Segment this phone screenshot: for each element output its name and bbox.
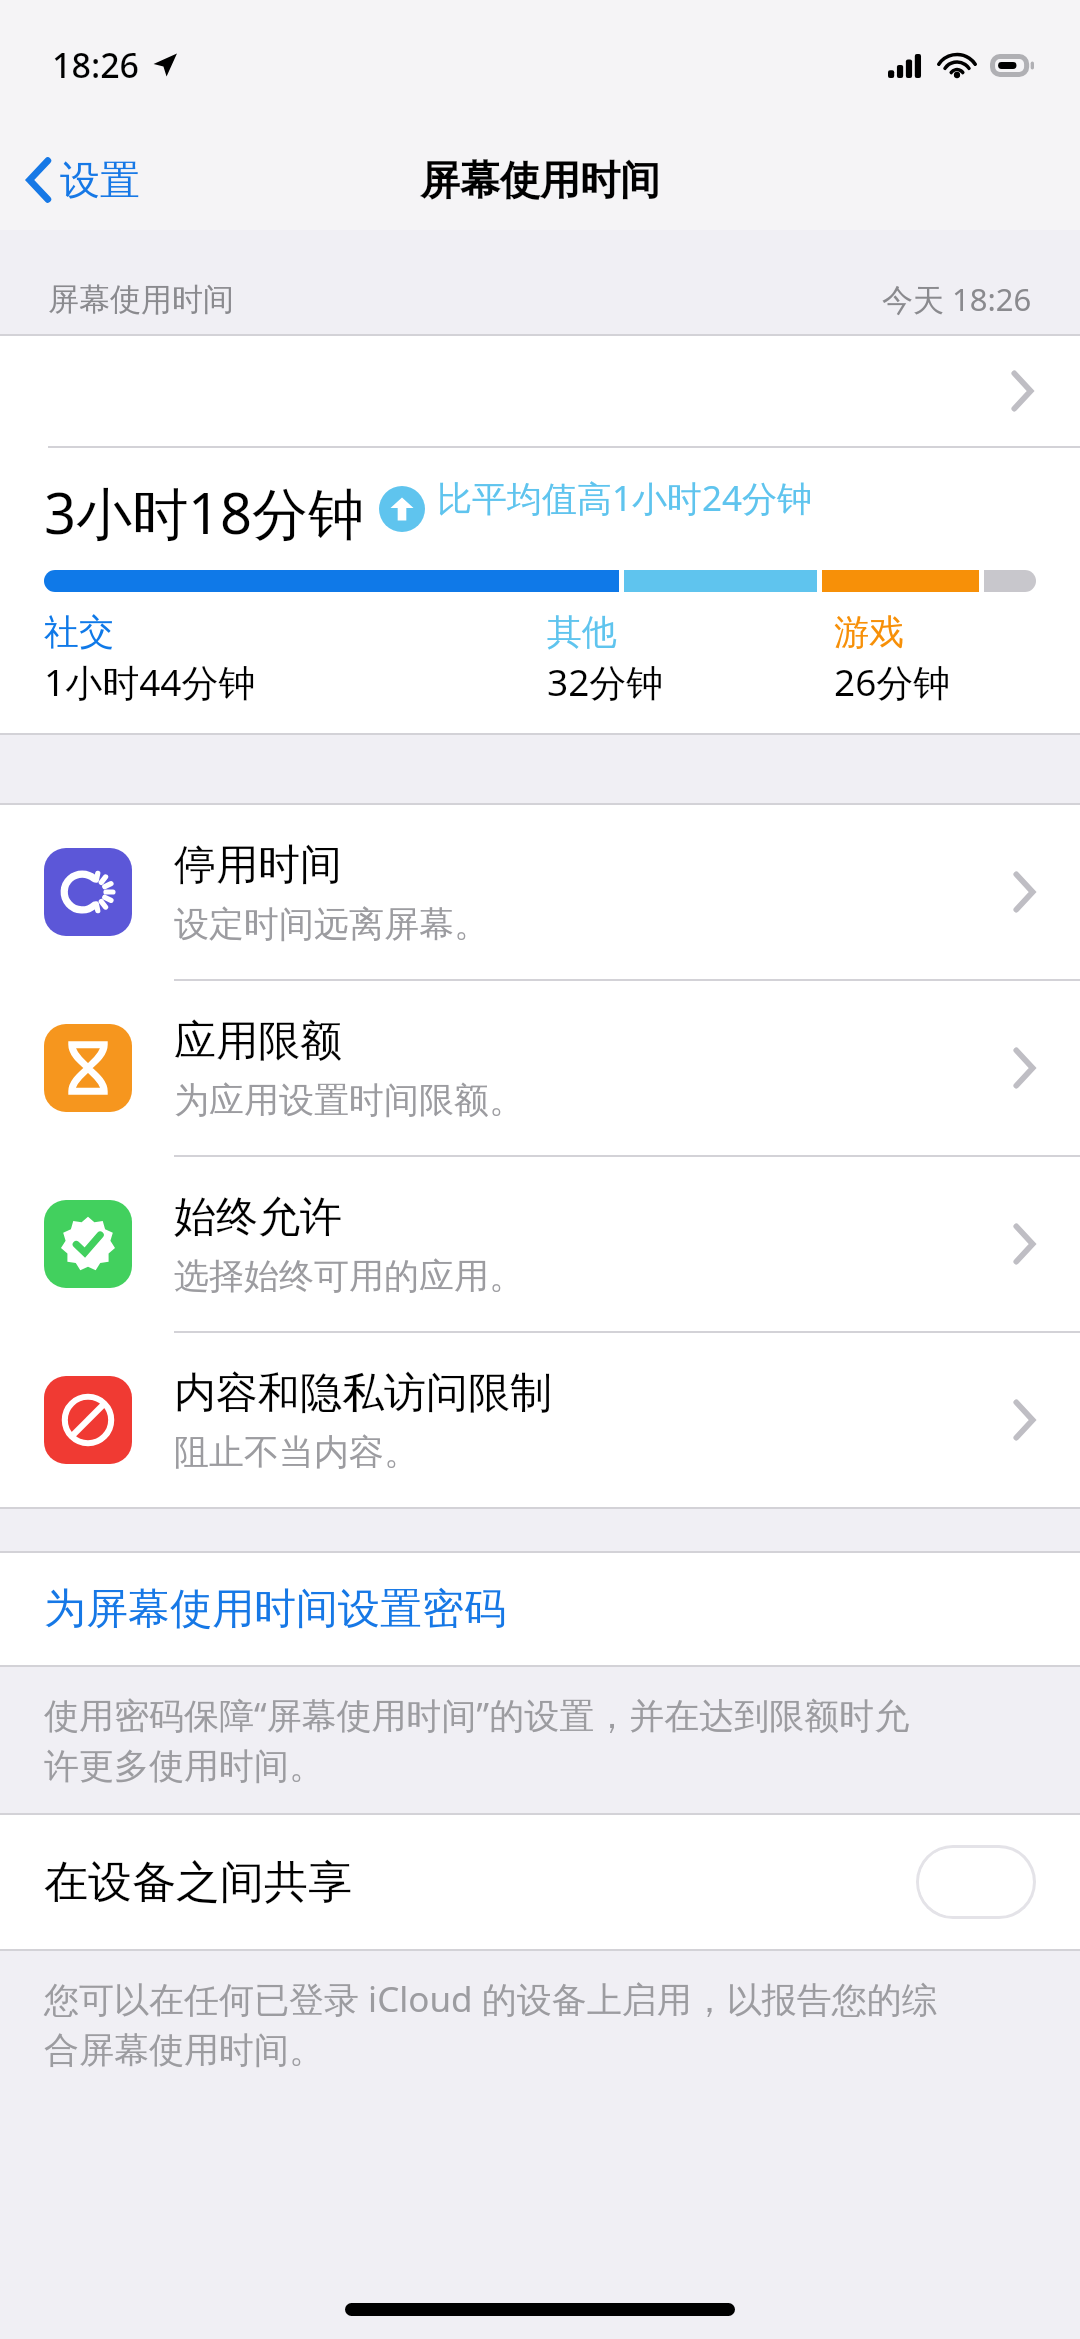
staticText: 在设备之间共享 <box>44 1855 352 1910</box>
staticText: 3小时18分钟 <box>44 474 365 550</box>
staticText: 屏幕使用时间 <box>420 155 660 205</box>
button[interactable]: 在设备之间共享 <box>0 1815 1080 1949</box>
button[interactable]: 应用限额 <box>0 981 1080 1157</box>
staticText: 使用密码保障“屏幕使用时间”的设置，并在达到限额时允 许更多使用时间。 <box>44 1691 910 1789</box>
staticText: 18:26 <box>52 42 140 88</box>
staticText: 为屏幕使用时间设置密码 <box>44 1583 506 1636</box>
button[interactable]: 设置 <box>0 145 162 215</box>
button[interactable]: 为屏幕使用时间设置密码 <box>0 1553 1080 1665</box>
staticText: 今天 18:26 <box>882 278 1032 320</box>
staticText: 设定时间远离屏幕。 <box>174 902 489 946</box>
staticText: 1小时44分钟 <box>44 656 256 707</box>
staticText: 选择始终可用的应用。 <box>174 1254 524 1298</box>
staticText: 屏幕使用时间 <box>48 280 234 319</box>
button[interactable]: 始终允许 <box>0 1157 1080 1333</box>
button[interactable]: 停用时间 <box>0 805 1080 981</box>
staticText: 阻止不当内容。 <box>174 1430 419 1474</box>
button[interactable]: 内容和隐私访问限制 <box>0 1333 1080 1507</box>
staticText: 设置 <box>60 155 140 205</box>
staticText: 比平均值高1小时24分钟 <box>437 474 813 522</box>
staticText: 为应用设置时间限额。 <box>174 1078 524 1122</box>
staticText: 停用时间 <box>174 839 342 892</box>
button[interactable]: 查看全部活动 <box>0 336 1080 446</box>
staticText: 内容和隐私访问限制 <box>174 1367 552 1420</box>
staticText: 社交 <box>44 610 114 654</box>
staticText: 应用限额 <box>174 1015 342 1068</box>
staticText: 始终允许 <box>174 1191 342 1244</box>
staticText: 您可以在任何已登录 iCloud 的设备上启用，以报告您的综 合屏幕使用时间。 <box>44 1975 937 2073</box>
staticText: 游戏 <box>834 610 904 654</box>
staticText: 其他 <box>547 610 617 654</box>
staticText: 26分钟 <box>834 656 951 707</box>
staticText: 32分钟 <box>547 656 664 707</box>
